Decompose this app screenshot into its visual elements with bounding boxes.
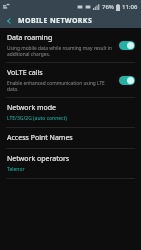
staticText: 76% — [102, 3, 114, 11]
button[interactable]: VoLTE calls — [0, 63, 141, 97]
button[interactable]: Toggle — [119, 76, 135, 85]
button[interactable]: Network mode — [0, 98, 141, 127]
staticText: Network mode — [7, 103, 57, 113]
staticText: Enable enhanced communication using LTE … — [7, 80, 115, 92]
staticText: Telenor — [7, 166, 25, 173]
button[interactable]: Access Point Names — [0, 128, 141, 148]
staticText: Data roaming — [7, 33, 53, 43]
button[interactable]: Data roaming — [0, 28, 141, 62]
staticText: MOBILE NETWORKS — [18, 16, 93, 26]
staticText: Network operators — [7, 154, 70, 164]
staticText: 11:06 — [122, 3, 138, 11]
button[interactable]: Toggle — [119, 41, 135, 50]
button[interactable]: Back — [3, 15, 14, 26]
staticText: Using mobile data while roaming may resu… — [7, 45, 115, 57]
staticText: LTE/3G/2G (auto connect) — [7, 115, 67, 122]
staticText: VoLTE calls — [7, 68, 43, 78]
staticText: Access Point Names — [7, 133, 73, 143]
button[interactable]: Network operators — [0, 149, 141, 178]
